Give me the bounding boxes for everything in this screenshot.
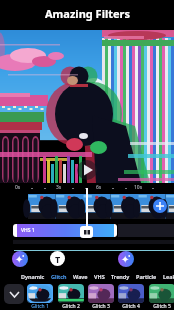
button[interactable]: [149, 284, 174, 303]
staticText: Glitch 3: [92, 303, 110, 310]
staticText: Glitch 1: [31, 303, 49, 310]
button[interactable]: [153, 199, 167, 213]
button[interactable]: [88, 284, 114, 303]
button[interactable]: VHS: [94, 273, 105, 280]
staticText: 3s: [56, 184, 62, 191]
staticText: 0s: [15, 184, 21, 191]
button[interactable]: [28, 194, 174, 219]
staticText: Glitch 2: [62, 303, 80, 310]
button[interactable]: Wave: [73, 273, 88, 280]
staticText: Glitch 4: [122, 303, 140, 310]
button[interactable]: [27, 284, 53, 303]
staticText: Glitch 5: [153, 303, 171, 310]
button[interactable]: Glitch: [51, 273, 67, 280]
staticText: VHS 1: [21, 227, 35, 234]
staticText: Amazing Filters: [45, 6, 130, 21]
button[interactable]: [118, 284, 144, 303]
staticText: 6s: [96, 184, 102, 191]
button[interactable]: Particle: [136, 273, 157, 280]
staticText: T: [55, 253, 61, 265]
button[interactable]: [12, 251, 28, 267]
button[interactable]: Dynamic: [21, 273, 45, 280]
button[interactable]: VHS 1: [13, 224, 117, 237]
button[interactable]: [58, 284, 84, 303]
button[interactable]: T: [50, 251, 65, 266]
button[interactable]: Trendy: [111, 273, 130, 280]
button[interactable]: [4, 284, 24, 304]
button[interactable]: Leak: [163, 273, 174, 280]
staticText: 10s: [134, 184, 143, 191]
button[interactable]: [118, 251, 134, 267]
